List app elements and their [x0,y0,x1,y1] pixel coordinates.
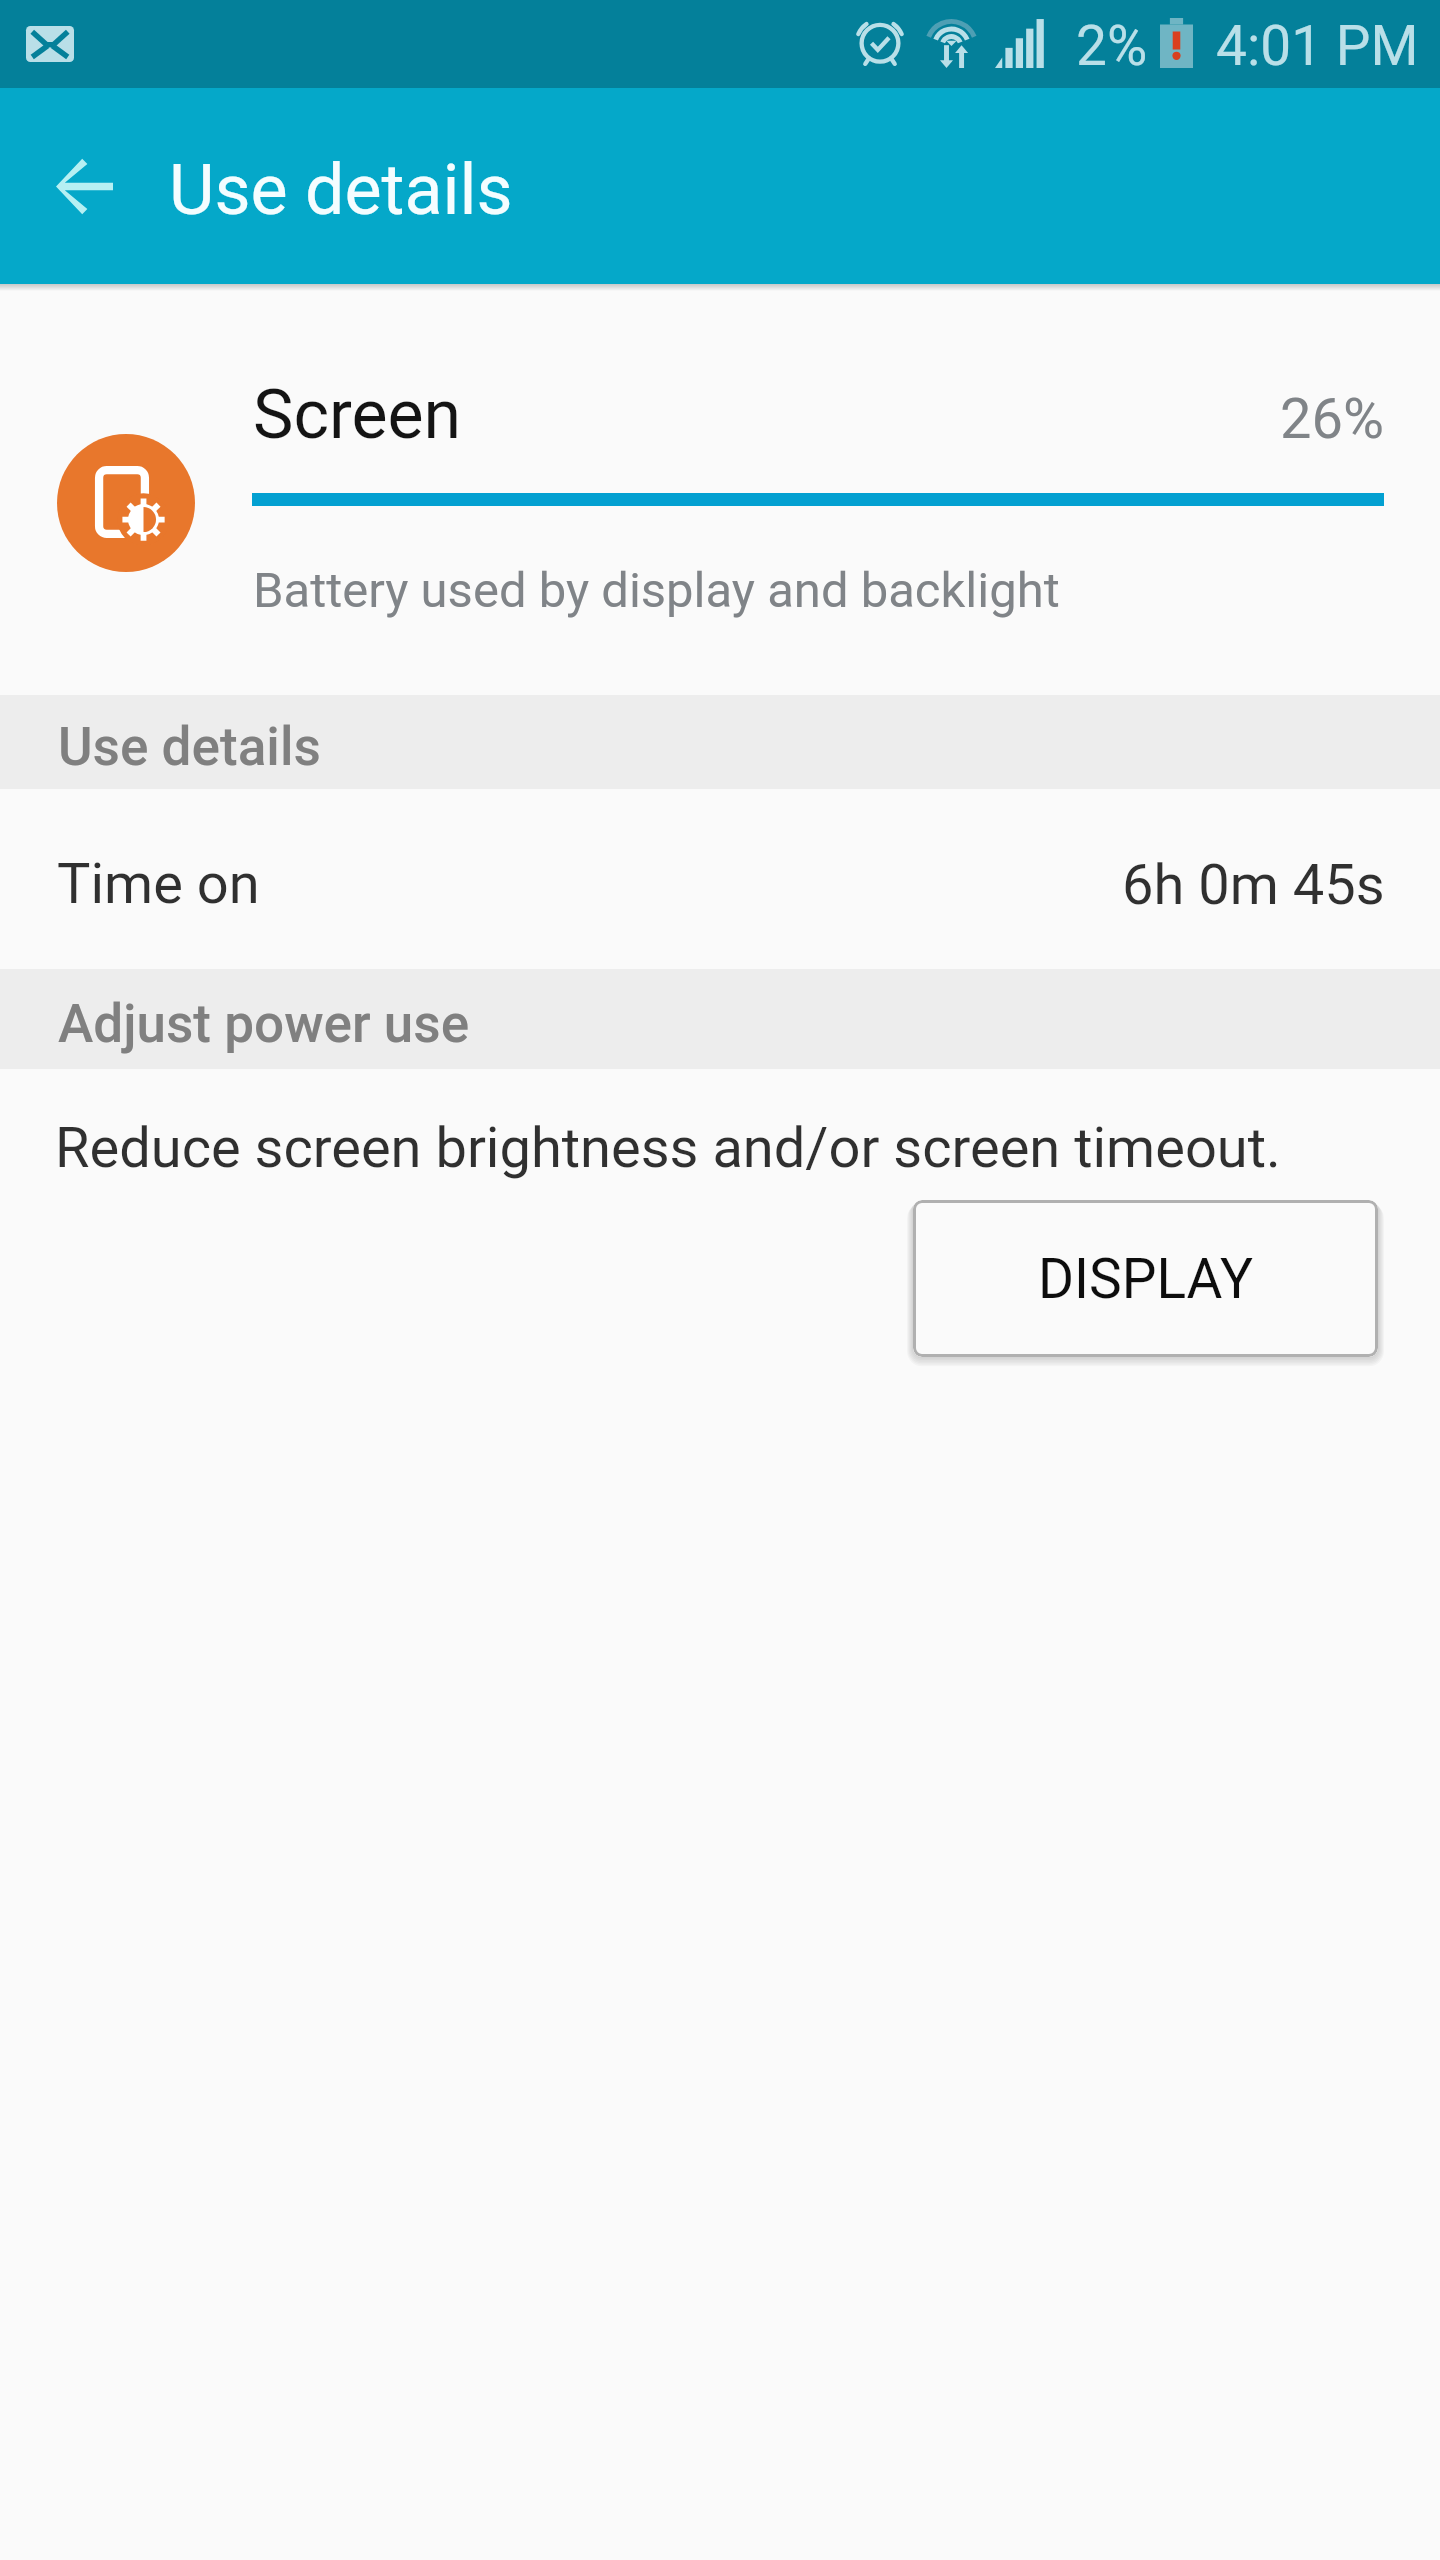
staticText: 2% [1076,14,1148,78]
staticText: 4:01 PM [1216,14,1419,78]
staticText: Battery used by display and backlight [253,562,1060,619]
button[interactable]: Navigate up [28,130,140,242]
staticText: Time on [57,851,260,917]
staticText: 26% [1280,386,1384,452]
staticText: DISPLAY [1038,1247,1253,1311]
staticText: 6h 0m 45s [1122,852,1385,918]
staticText: Reduce screen brightness and/or screen t… [55,1115,1281,1181]
button[interactable]: Time on [0,789,1440,969]
staticText: Screen [253,375,462,455]
button[interactable]: DISPLAY [913,1200,1378,1357]
staticText: Use details [58,716,321,778]
staticText: Use details [169,149,513,231]
staticText: Adjust power use [58,993,470,1055]
